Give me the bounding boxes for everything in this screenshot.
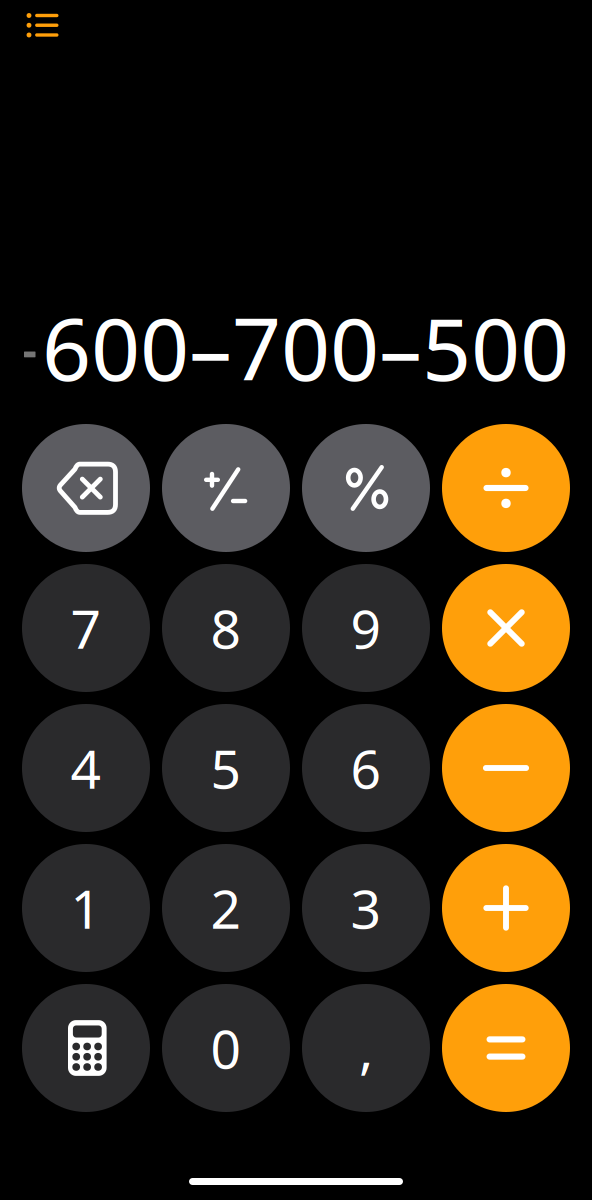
- staticText: 7: [70, 592, 101, 664]
- staticText: 9: [350, 592, 381, 664]
- button[interactable]: 4: [22, 704, 150, 832]
- staticText: 8: [210, 592, 241, 664]
- staticText: 6: [350, 732, 381, 804]
- button[interactable]: 8: [162, 564, 290, 692]
- button[interactable]: 1: [22, 844, 150, 972]
- staticText: 1: [70, 872, 101, 944]
- button[interactable]: History: [0, 0, 70, 47]
- staticText: 2: [210, 872, 241, 944]
- button[interactable]: 3: [302, 844, 430, 972]
- button[interactable]: Multiply: [442, 564, 570, 692]
- staticText: ,: [359, 1012, 373, 1084]
- staticText: 0: [210, 1012, 241, 1084]
- button[interactable]: 6: [302, 704, 430, 832]
- button[interactable]: 9: [302, 564, 430, 692]
- button[interactable]: 2: [162, 844, 290, 972]
- button[interactable]: Equals: [442, 984, 570, 1112]
- staticText: 3: [350, 872, 381, 944]
- button[interactable]: Add: [442, 844, 570, 972]
- button[interactable]: 7: [22, 564, 150, 692]
- button[interactable]: Divide: [442, 424, 570, 552]
- button[interactable]: Calculator: [22, 984, 150, 1112]
- button[interactable]: Toggle sign: [162, 424, 290, 552]
- staticText: 4: [70, 732, 101, 804]
- button[interactable]: 5: [162, 704, 290, 832]
- button[interactable]: Delete: [22, 424, 150, 552]
- button[interactable]: Subtract: [442, 704, 570, 832]
- button[interactable]: 0: [162, 984, 290, 1112]
- button[interactable]: Percent: [302, 424, 430, 552]
- staticText: 5: [210, 732, 241, 804]
- staticText: 600–700–500: [42, 289, 569, 406]
- button[interactable]: ,: [302, 984, 430, 1112]
